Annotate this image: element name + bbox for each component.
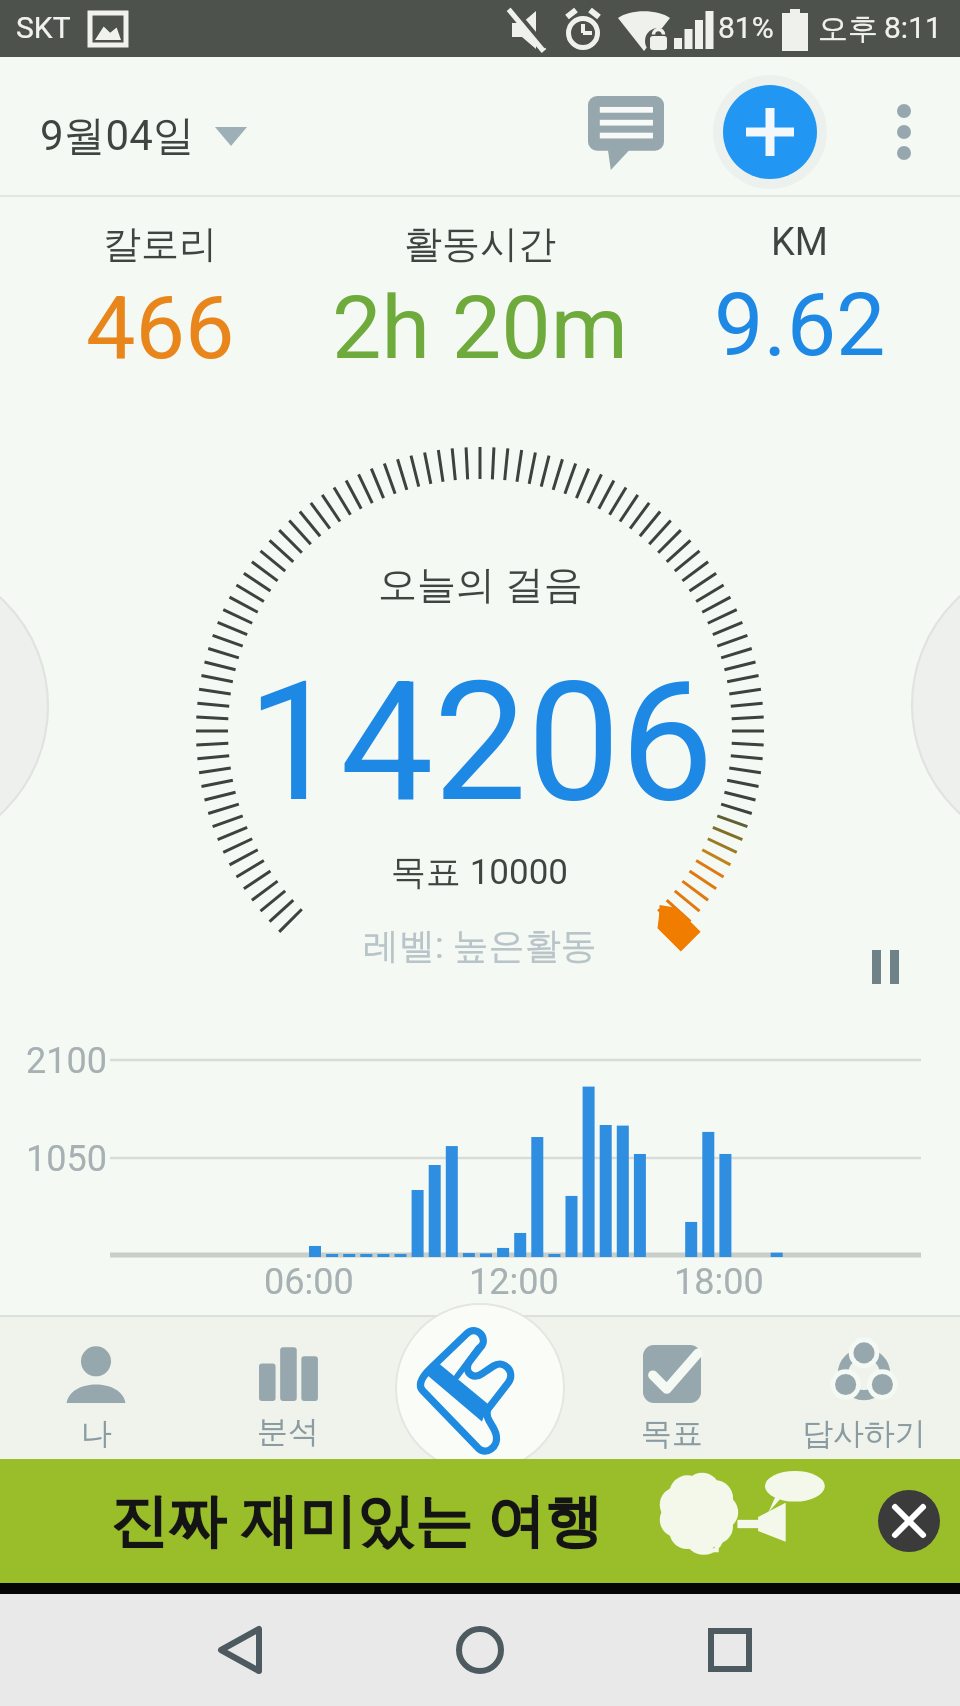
button[interactable]: 나 <box>0 1315 192 1459</box>
staticText: 진짜 재미있는 여행 <box>110 1485 603 1558</box>
staticText: 06:00 <box>264 1261 354 1303</box>
button[interactable]: More options <box>864 92 944 172</box>
button[interactable]: Recents <box>680 1594 780 1706</box>
staticText: 나 <box>81 1414 112 1453</box>
staticText: 답사하기 <box>802 1414 926 1453</box>
staticText: 9월04일 <box>40 110 195 163</box>
staticText: 오후 <box>818 10 878 48</box>
button[interactable]: 활동시간 <box>320 220 640 400</box>
staticText: 466 <box>86 276 235 379</box>
staticText: 목표 10000 <box>391 850 569 894</box>
staticText: 81% <box>718 10 774 45</box>
staticText: 12:00 <box>469 1261 559 1303</box>
button[interactable]: 9월04일 <box>0 98 271 175</box>
button[interactable]: Back <box>190 1594 290 1706</box>
staticText: 14206 <box>247 645 714 840</box>
staticText: 목표 <box>641 1414 703 1453</box>
button[interactable]: 칼로리 <box>0 220 320 400</box>
staticText: 분석 <box>257 1412 319 1451</box>
button[interactable]: 분석 <box>192 1315 384 1459</box>
button[interactable]: Messages <box>570 85 682 181</box>
staticText: 레벨: 높은활동 <box>363 923 597 968</box>
staticText: 9.62 <box>714 273 886 376</box>
staticText: 2100 <box>26 1040 107 1082</box>
staticText: 1050 <box>26 1138 107 1180</box>
button[interactable]: Add <box>723 85 817 179</box>
button[interactable]: Pause <box>840 922 930 1012</box>
staticText: 오늘의 걸음 <box>378 560 583 609</box>
staticText: 18:00 <box>674 1261 764 1303</box>
staticText: 2h 20m <box>332 276 628 379</box>
staticText: 활동시간 <box>404 220 556 268</box>
staticText: SKT <box>16 10 71 45</box>
staticText: KM <box>771 220 829 265</box>
button[interactable]: 목표 <box>576 1315 768 1459</box>
staticText: 8:11 <box>884 10 942 45</box>
button[interactable]: 답사하기 <box>768 1315 960 1459</box>
staticText: 칼로리 <box>103 220 217 268</box>
button[interactable]: KM <box>640 220 960 400</box>
button[interactable]: Close ad <box>878 1490 940 1552</box>
button[interactable]: Steps <box>396 1304 564 1472</box>
button[interactable]: Home <box>430 1594 530 1706</box>
